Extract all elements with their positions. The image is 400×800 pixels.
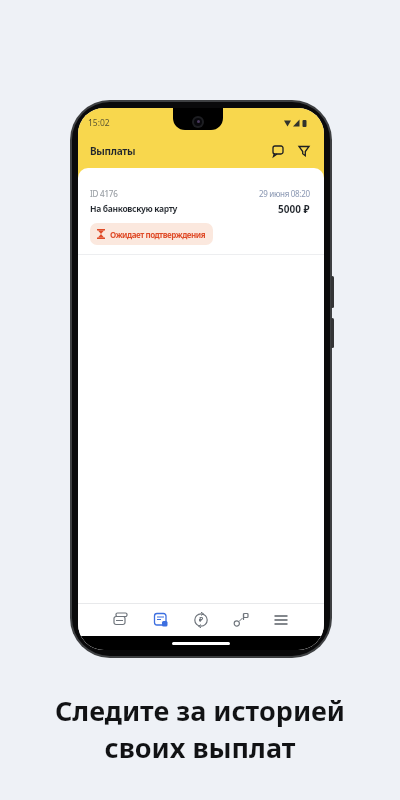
button[interactable] xyxy=(295,142,313,160)
staticText: ₽ xyxy=(199,615,204,625)
button[interactable]: ₽ xyxy=(193,612,209,628)
staticText: 29 июня 08:20 xyxy=(259,188,310,199)
staticText: Ожидает подтверждения xyxy=(110,229,206,240)
button[interactable] xyxy=(269,142,287,160)
button[interactable] xyxy=(153,612,169,628)
staticText: 5000 ₽ xyxy=(278,202,310,216)
staticText: Выплаты xyxy=(90,144,136,158)
button[interactable]: Ожидает подтверждения xyxy=(90,223,213,245)
staticText: На банковскую карту xyxy=(90,203,178,215)
staticText: Следите за историей своих выплат xyxy=(0,692,400,766)
staticText: ID 4176 xyxy=(90,188,118,199)
staticText: 15:02 xyxy=(88,117,110,129)
button[interactable] xyxy=(274,613,288,627)
button[interactable] xyxy=(233,612,249,628)
button[interactable] xyxy=(110,612,132,628)
